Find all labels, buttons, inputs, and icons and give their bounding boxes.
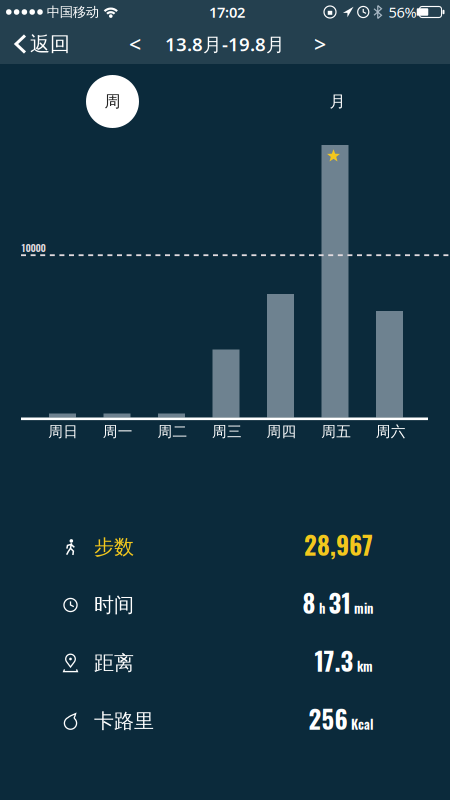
staticText: Kcal: [351, 714, 373, 733]
staticText: 周一: [103, 422, 133, 440]
staticText: 28,967: [304, 526, 373, 563]
staticText: 卡路里: [94, 709, 154, 733]
staticText: min: [354, 598, 373, 617]
staticText: 周二: [157, 422, 187, 440]
staticText: 256: [308, 700, 347, 737]
staticText: 月: [329, 92, 345, 111]
staticText: <: [129, 30, 141, 58]
staticText: 周五: [321, 422, 351, 440]
staticText: 13.8月-19.8月: [165, 32, 285, 56]
staticText: 周六: [376, 422, 406, 440]
staticText: 返回: [30, 32, 70, 56]
button[interactable]: 月: [311, 75, 364, 128]
staticText: 56%: [388, 2, 416, 22]
staticText: h: [319, 598, 325, 617]
staticText: km: [357, 656, 373, 675]
staticText: 10000: [21, 240, 45, 255]
staticText: 时间: [94, 593, 134, 617]
staticText: 步数: [94, 535, 134, 559]
button[interactable]: Previous week: [115, 24, 145, 64]
button[interactable]: Next week: [305, 24, 335, 64]
staticText: 距离: [94, 651, 134, 675]
staticText: 31: [328, 584, 350, 621]
staticText: 中国移动: [47, 4, 99, 20]
staticText: >: [314, 30, 326, 58]
staticText: 8: [302, 584, 315, 621]
staticText: 周三: [212, 422, 242, 440]
staticText: 17:02: [209, 2, 245, 22]
staticText: 17.3: [314, 642, 353, 679]
staticText: 周日: [48, 422, 78, 440]
staticText: 周四: [267, 422, 297, 440]
button[interactable]: 返回: [0, 32, 70, 56]
staticText: 周: [104, 92, 120, 111]
button[interactable]: 周: [86, 75, 139, 128]
